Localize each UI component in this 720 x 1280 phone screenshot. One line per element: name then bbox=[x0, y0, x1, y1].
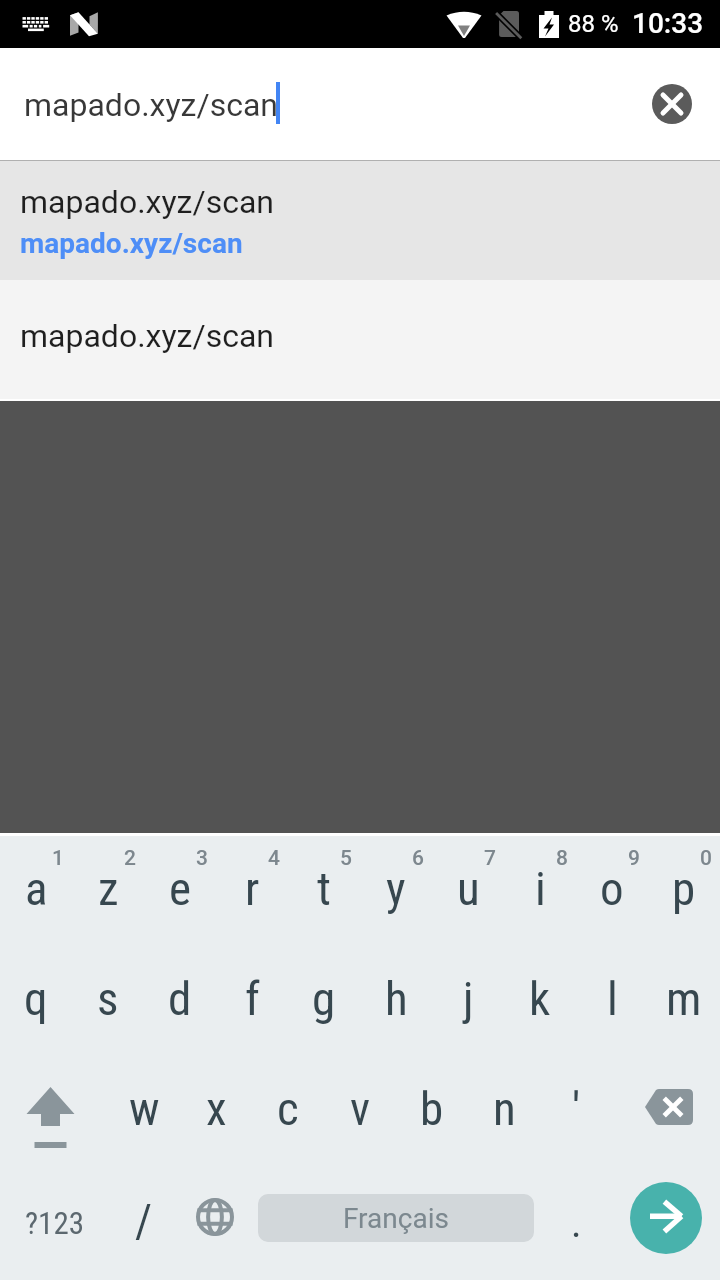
button[interactable]: s bbox=[72, 946, 144, 1056]
button[interactable]: a bbox=[0, 836, 72, 946]
staticText: 2 bbox=[118, 846, 142, 871]
staticText: 88 % bbox=[568, 10, 619, 38]
button[interactable]: Shift bbox=[0, 1056, 108, 1166]
staticText: u bbox=[457, 861, 480, 916]
staticText: 4 bbox=[262, 846, 286, 871]
button[interactable]: o bbox=[576, 836, 648, 946]
staticText: w bbox=[129, 1081, 160, 1136]
button[interactable]: y bbox=[360, 836, 432, 946]
button[interactable]: Change language bbox=[178, 1166, 252, 1280]
button[interactable]: t bbox=[288, 836, 360, 946]
button[interactable]: w bbox=[108, 1056, 180, 1166]
staticText: j bbox=[463, 971, 474, 1026]
button[interactable]: g bbox=[288, 946, 360, 1056]
button[interactable]: z bbox=[72, 836, 144, 946]
staticText: l bbox=[607, 971, 618, 1026]
staticText: d bbox=[168, 971, 192, 1026]
staticText: c bbox=[277, 1081, 299, 1136]
staticText: z bbox=[98, 861, 119, 916]
staticText: Français bbox=[343, 1202, 449, 1235]
staticText: p bbox=[672, 861, 696, 916]
button[interactable]: k bbox=[504, 946, 576, 1056]
staticText: i bbox=[535, 861, 546, 916]
staticText: 0 bbox=[694, 846, 718, 871]
staticText: 10:33 bbox=[632, 7, 704, 40]
staticText: v bbox=[350, 1081, 371, 1136]
staticText: mapado.xyz/scan bbox=[20, 183, 275, 221]
staticText: 8 bbox=[550, 846, 574, 871]
button[interactable]: p bbox=[648, 836, 720, 946]
staticText: mapado.xyz/scan bbox=[20, 227, 243, 260]
button[interactable]: ?123 bbox=[0, 1166, 110, 1280]
button[interactable]: r bbox=[216, 836, 288, 946]
button[interactable]: m bbox=[648, 946, 720, 1056]
staticText: s bbox=[97, 971, 119, 1026]
button[interactable]: Clear text bbox=[652, 84, 692, 124]
staticText: . bbox=[571, 1200, 582, 1247]
button[interactable]: Go bbox=[630, 1182, 702, 1254]
button[interactable]: d bbox=[144, 946, 216, 1056]
staticText: 6 bbox=[406, 846, 430, 871]
button[interactable]: ' bbox=[540, 1056, 612, 1166]
staticText: m bbox=[666, 971, 702, 1026]
button[interactable]: f bbox=[216, 946, 288, 1056]
staticText: x bbox=[206, 1081, 227, 1136]
button[interactable]: c bbox=[252, 1056, 324, 1166]
button[interactable]: j bbox=[432, 946, 504, 1056]
button[interactable]: mapado.xyz/scan bbox=[0, 161, 720, 280]
button[interactable]: / bbox=[110, 1166, 178, 1280]
staticText: ' bbox=[572, 1081, 581, 1136]
staticText: a bbox=[25, 861, 48, 916]
button[interactable]: e bbox=[144, 836, 216, 946]
button[interactable]: u bbox=[432, 836, 504, 946]
staticText: 5 bbox=[334, 846, 358, 871]
button[interactable]: Français bbox=[258, 1194, 534, 1242]
staticText: b bbox=[420, 1081, 444, 1136]
staticText: mapado.xyz/scan bbox=[24, 86, 279, 124]
staticText: ?123 bbox=[25, 1205, 85, 1241]
staticText: o bbox=[600, 861, 624, 916]
button[interactable]: . bbox=[542, 1166, 610, 1280]
button[interactable]: l bbox=[576, 946, 648, 1056]
staticText: 1 bbox=[46, 846, 70, 871]
staticText: h bbox=[385, 971, 408, 1026]
staticText: r bbox=[245, 861, 260, 916]
button[interactable]: q bbox=[0, 946, 72, 1056]
staticText: 9 bbox=[622, 846, 646, 871]
staticText: f bbox=[245, 971, 260, 1026]
staticText: y bbox=[386, 861, 406, 916]
staticText: e bbox=[169, 861, 192, 916]
staticText: / bbox=[135, 1194, 153, 1248]
staticText: k bbox=[529, 971, 551, 1026]
button[interactable]: n bbox=[468, 1056, 540, 1166]
staticText: n bbox=[493, 1081, 516, 1136]
button[interactable]: v bbox=[324, 1056, 396, 1166]
staticText: g bbox=[312, 971, 336, 1026]
button[interactable]: mapado.xyz/scan bbox=[0, 280, 720, 399]
button[interactable]: b bbox=[396, 1056, 468, 1166]
staticText: 7 bbox=[478, 846, 502, 871]
staticText: 3 bbox=[190, 846, 214, 871]
button[interactable]: Backspace bbox=[612, 1056, 720, 1166]
button[interactable]: h bbox=[360, 946, 432, 1056]
staticText: t bbox=[317, 861, 331, 916]
button[interactable]: x bbox=[180, 1056, 252, 1166]
staticText: mapado.xyz/scan bbox=[20, 317, 275, 355]
button[interactable]: i bbox=[504, 836, 576, 946]
staticText: q bbox=[24, 971, 48, 1026]
